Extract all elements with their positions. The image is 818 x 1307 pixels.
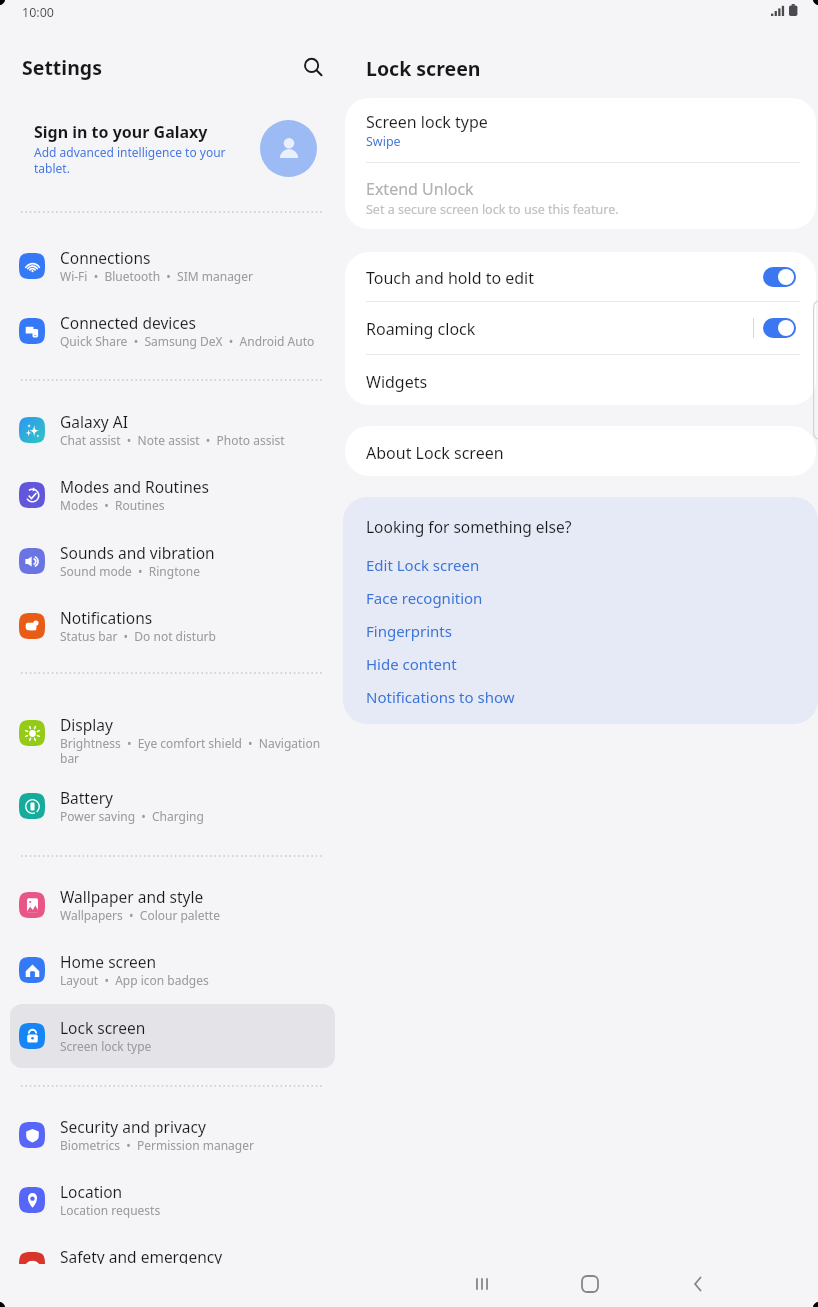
staticText: Display — [60, 714, 113, 735]
button[interactable] — [10, 1168, 335, 1232]
button[interactable]: Roaming clock — [763, 318, 796, 338]
staticText: Location — [60, 1181, 123, 1202]
staticText: Add advanced intelligence to your tablet… — [34, 144, 234, 177]
button[interactable]: Recents — [440, 1258, 524, 1307]
staticText: Sound mode • Ringtone — [60, 563, 322, 579]
button[interactable] — [10, 701, 335, 765]
button[interactable] — [345, 426, 818, 476]
staticText: Battery — [60, 787, 114, 808]
staticText: Lock screen — [60, 1017, 146, 1038]
staticText: Set a secure screen lock to use this fea… — [366, 201, 619, 218]
staticText: Settings — [22, 54, 102, 81]
staticText: Lock screen — [366, 55, 481, 82]
staticText: Looking for something else? — [366, 516, 572, 537]
button[interactable]: Back — [656, 1258, 740, 1307]
button[interactable] — [345, 252, 818, 302]
button[interactable] — [345, 302, 818, 354]
staticText: Wallpapers • Colour palette — [60, 907, 322, 923]
button[interactable] — [10, 299, 335, 363]
staticText: Quick Share • Samsung DeX • Android Auto — [60, 333, 322, 349]
staticText: Brightness • Eye comfort shield • Naviga… — [60, 735, 322, 766]
staticText: Status bar • Do not disturb — [60, 628, 322, 644]
staticText: Modes and Routines — [60, 476, 209, 497]
staticText: 10:00 — [22, 4, 54, 21]
button[interactable] — [366, 650, 566, 678]
button[interactable] — [345, 355, 818, 405]
staticText: Extend Unlock — [366, 178, 474, 200]
staticText: Chat assist • Note assist • Photo assist — [60, 432, 322, 448]
button[interactable] — [10, 938, 335, 1002]
button[interactable] — [366, 551, 566, 579]
button[interactable] — [10, 234, 335, 298]
button[interactable] — [10, 774, 335, 838]
button[interactable] — [366, 683, 566, 711]
staticText: Galaxy AI — [60, 411, 128, 432]
staticText: Face recognition — [366, 588, 483, 608]
staticText: Widgets — [366, 371, 428, 393]
button[interactable] — [366, 617, 566, 645]
staticText: Screen lock type — [60, 1038, 322, 1054]
staticText: Home screen — [60, 951, 157, 972]
staticText: Power saving • Charging — [60, 808, 322, 824]
button[interactable] — [345, 163, 818, 229]
staticText: Swipe — [366, 133, 401, 150]
staticText: Edit Lock screen — [366, 555, 480, 575]
staticText: Fingerprints — [366, 621, 452, 641]
staticText: Screen lock type — [366, 111, 488, 133]
staticText: Hide content — [366, 654, 457, 674]
staticText: Sign in to your Galaxy — [34, 121, 208, 143]
button[interactable] — [10, 594, 335, 658]
button[interactable]: Touch and hold to edit — [763, 267, 796, 287]
button[interactable] — [10, 398, 335, 462]
button[interactable] — [10, 105, 335, 191]
button[interactable] — [10, 529, 335, 593]
button[interactable] — [10, 1004, 335, 1068]
button[interactable] — [10, 463, 335, 527]
staticText: Sounds and vibration — [60, 542, 215, 563]
staticText: Notifications to show — [366, 687, 515, 707]
staticText: Connected devices — [60, 312, 196, 333]
button[interactable] — [366, 584, 566, 612]
staticText: Security and privacy — [60, 1116, 206, 1137]
staticText: Wi-Fi • Bluetooth • SIM manager — [60, 268, 322, 284]
staticText: Roaming clock — [366, 318, 476, 340]
button[interactable] — [10, 873, 335, 937]
staticText: Notifications — [60, 607, 153, 628]
button[interactable]: Home — [548, 1258, 632, 1307]
staticText: Safety and emergency — [60, 1246, 223, 1264]
button[interactable] — [10, 1233, 335, 1264]
button[interactable] — [10, 1103, 335, 1167]
staticText: Location requests — [60, 1202, 322, 1218]
staticText: Wallpaper and style — [60, 886, 204, 907]
button[interactable] — [345, 98, 818, 162]
staticText: Modes • Routines — [60, 497, 322, 513]
staticText: Biometrics • Permission manager — [60, 1137, 322, 1153]
button[interactable]: Search — [292, 46, 332, 86]
staticText: Touch and hold to edit — [366, 267, 535, 289]
staticText: Connections — [60, 247, 151, 268]
staticText: Layout • App icon badges — [60, 972, 322, 988]
staticText: About Lock screen — [366, 442, 504, 464]
